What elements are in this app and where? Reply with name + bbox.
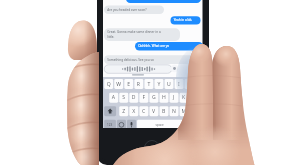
button[interactable]: Hands holding a phone showing a messagin… bbox=[0, 0, 300, 165]
